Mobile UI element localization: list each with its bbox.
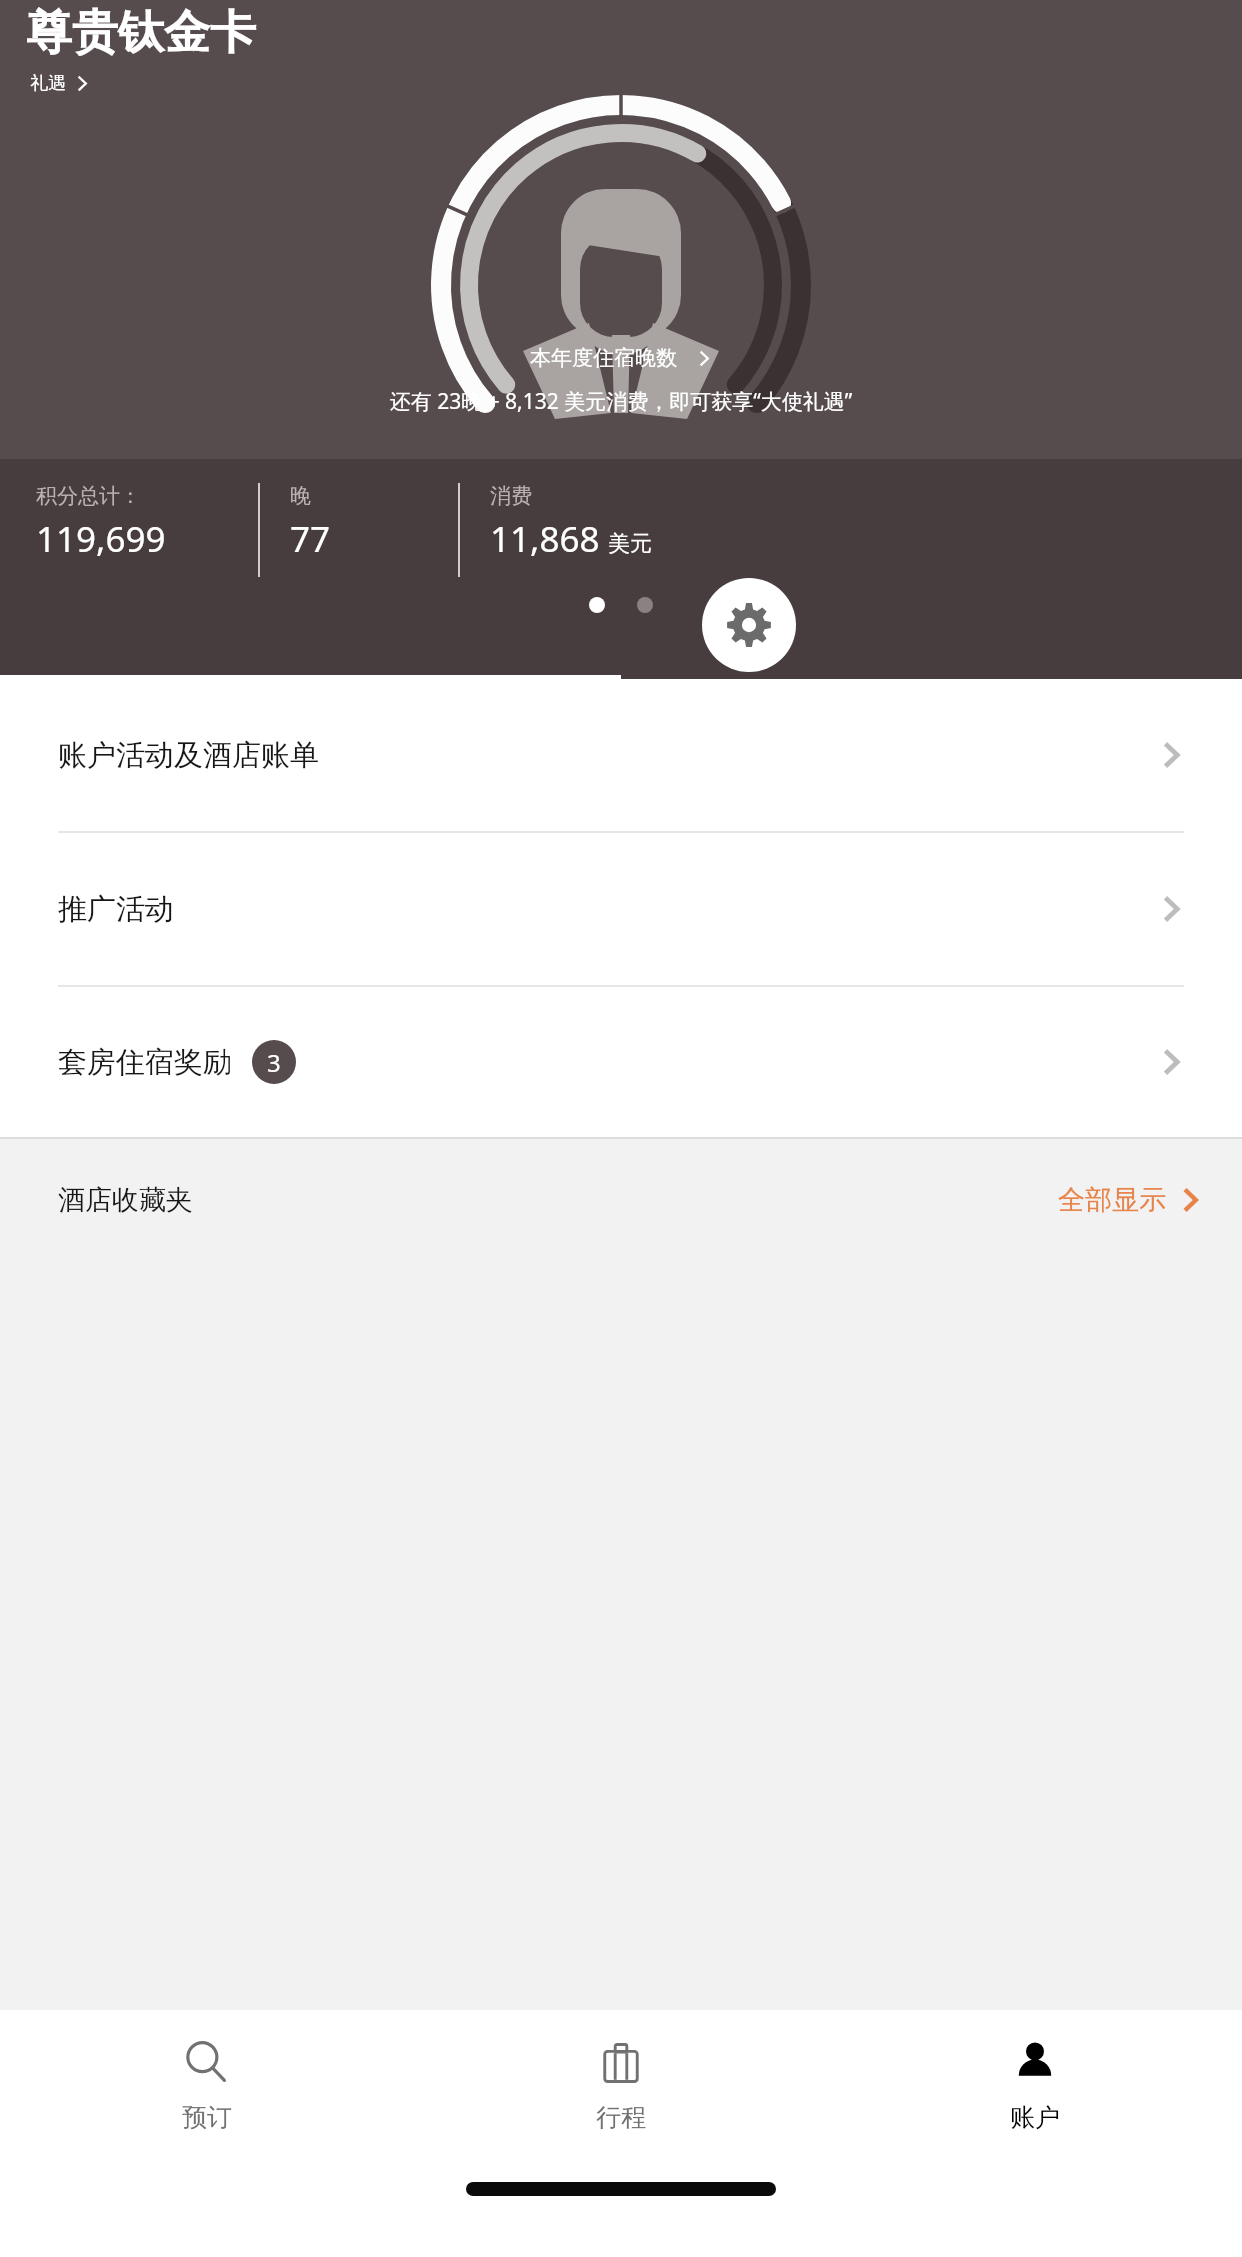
staticText: 账户 (1010, 2102, 1060, 2133)
staticText: 11,868 (490, 515, 600, 563)
button[interactable]: 本年度住宿晚数 (0, 345, 1242, 371)
staticText: 积分总计： (36, 483, 141, 509)
staticText: 尊贵钛金卡 (26, 4, 256, 62)
staticText: 77 (290, 515, 331, 563)
other: Account (1006, 2034, 1064, 2092)
staticText: 账户活动及酒店账单 (58, 737, 1160, 774)
button[interactable]: Account (828, 2010, 1242, 2152)
button[interactable]: Search (0, 2010, 414, 2152)
staticText: 礼遇 (30, 72, 66, 95)
other: Trips (592, 2034, 650, 2092)
button[interactable]: 礼遇 (30, 72, 90, 95)
staticText: 119,699 (36, 515, 166, 563)
button[interactable]: 推广活动 (0, 833, 1242, 985)
staticText: 3 (267, 1046, 281, 1079)
button[interactable]: 套房住宿奖励 (0, 987, 1242, 1137)
button[interactable]: 全部显示 (1058, 1183, 1202, 1217)
staticText: 推广活动 (58, 891, 1160, 928)
staticText: 酒店收藏夹 (58, 1183, 193, 1217)
staticText: 美元 (608, 530, 652, 558)
staticText: 本年度住宿晚数 (530, 345, 677, 371)
staticText: 还有 23晚 + 8,132 美元消费，即可获享“大使礼遇” (94, 387, 1148, 416)
staticText: 晚 (290, 483, 311, 509)
button[interactable]: 账户活动及酒店账单 (0, 679, 1242, 831)
staticText: 消费 (490, 483, 532, 509)
staticText: 行程 (596, 2102, 646, 2133)
staticText: 全部显示 (1058, 1183, 1166, 1217)
button[interactable]: Trips (414, 2010, 828, 2152)
button[interactable]: Settings (702, 578, 796, 672)
staticText: 套房住宿奖励 (58, 1044, 232, 1081)
staticText: 预订 (182, 2102, 232, 2133)
other: Search (178, 2034, 236, 2092)
